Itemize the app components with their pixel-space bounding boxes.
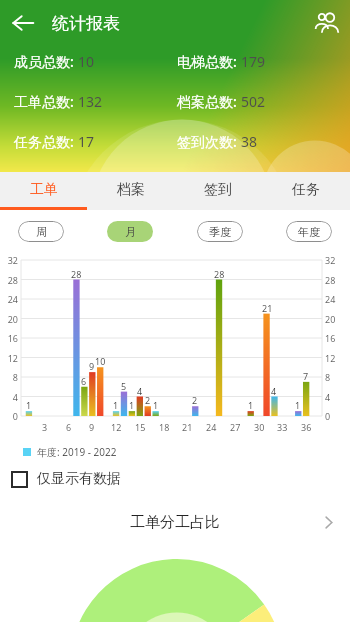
staticText: 16 <box>7 332 18 344</box>
staticText: 仅显示有数据 <box>37 470 121 488</box>
staticText: 8 <box>12 371 18 383</box>
staticText: 6 <box>66 421 72 433</box>
other: Open work order split detail <box>318 512 338 532</box>
staticText: 12 <box>325 352 336 364</box>
button[interactable]: Back <box>0 0 46 46</box>
staticText: 10 <box>78 52 95 71</box>
button[interactable]: 周 <box>18 221 64 242</box>
staticText: 电梯总数: <box>177 52 241 71</box>
staticText: 季度 <box>209 225 231 239</box>
staticText: 24 <box>206 421 217 433</box>
staticText: 8 <box>325 371 331 383</box>
staticText: 9 <box>89 360 95 372</box>
staticText: 27 <box>230 421 241 433</box>
staticText: 任务总数: <box>14 132 78 151</box>
staticText: 成员总数: <box>14 52 78 71</box>
staticText: 502 <box>241 92 266 111</box>
staticText: 28 <box>7 274 18 286</box>
staticText: 21 <box>182 421 193 433</box>
staticText: 4 <box>137 385 143 397</box>
staticText: 12 <box>7 352 18 364</box>
staticText: 16 <box>325 332 336 344</box>
staticText: 15 <box>135 421 146 433</box>
staticText: 年度: 2019 - 2022 <box>37 445 117 459</box>
staticText: 年度 <box>298 225 320 239</box>
staticText: 9 <box>89 421 95 433</box>
staticText: 档案 <box>117 181 145 199</box>
staticText: 179 <box>241 52 266 71</box>
staticText: 1 <box>153 399 159 411</box>
staticText: 1 <box>295 399 301 411</box>
button[interactable]: 工单分工占比 <box>0 508 350 536</box>
staticText: 统计报表 <box>52 13 120 34</box>
staticText: 1 <box>113 399 119 411</box>
staticText: 28 <box>71 268 82 280</box>
staticText: 28 <box>325 274 336 286</box>
staticText: 38 <box>241 132 258 151</box>
staticText: 1 <box>26 399 32 411</box>
button[interactable]: 签到 <box>174 172 262 210</box>
staticText: 0 <box>12 410 18 422</box>
staticText: 12 <box>111 421 122 433</box>
staticText: 32 <box>325 254 336 266</box>
button[interactable]: 月 <box>107 221 153 242</box>
staticText: 4 <box>271 385 277 397</box>
staticText: 4 <box>12 391 18 403</box>
staticText: 3 <box>42 421 48 433</box>
staticText: 32 <box>7 254 18 266</box>
staticText: 33 <box>277 421 288 433</box>
button[interactable]: 工单 <box>0 172 87 210</box>
staticText: 21 <box>262 302 273 314</box>
staticText: 0 <box>325 410 331 422</box>
staticText: 30 <box>254 421 265 433</box>
staticText: 2 <box>145 394 151 406</box>
staticText: 6 <box>81 375 87 387</box>
button[interactable]: 年度 <box>286 221 332 242</box>
staticText: 7 <box>303 370 309 382</box>
staticText: 4 <box>325 391 331 403</box>
staticText: 档案总数: <box>177 92 241 111</box>
staticText: 24 <box>325 293 336 305</box>
staticText: 周 <box>36 225 47 239</box>
staticText: 签到次数: <box>177 132 241 151</box>
staticText: 签到 <box>204 181 232 199</box>
staticText: 工单 <box>30 181 58 199</box>
staticText: 132 <box>78 92 103 111</box>
staticText: 24 <box>7 293 18 305</box>
button[interactable]: 任务 <box>262 172 350 210</box>
staticText: 18 <box>159 421 170 433</box>
staticText: 20 <box>325 313 336 325</box>
button[interactable]: 档案 <box>87 172 174 210</box>
staticText: 17 <box>78 132 95 151</box>
staticText: 工单总数: <box>14 92 78 111</box>
staticText: 5 <box>121 380 127 392</box>
staticText: 工单分工占比 <box>130 513 220 532</box>
button[interactable]: 仅显示有数据 <box>11 466 350 492</box>
staticText: 月 <box>125 225 136 239</box>
staticText: 36 <box>301 421 312 433</box>
staticText: 28 <box>214 268 225 280</box>
button[interactable]: Members <box>304 0 350 46</box>
staticText: 10 <box>95 355 106 367</box>
staticText: 1 <box>248 399 254 411</box>
staticText: 2 <box>192 394 198 406</box>
staticText: 20 <box>7 313 18 325</box>
staticText: 1 <box>129 399 135 411</box>
button[interactable]: 季度 <box>197 221 243 242</box>
staticText: 任务 <box>292 181 320 199</box>
